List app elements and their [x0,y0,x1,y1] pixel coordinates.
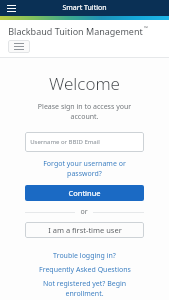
staticText: Trouble logging in? [53,251,116,261]
staticText: Forgot your username or password? [25,159,144,179]
staticText: I am a first-time user [48,225,122,235]
staticText: Continue [68,188,101,198]
button[interactable]: Frequently Asked Questions [39,265,131,275]
button[interactable]: I am a first-time user [25,222,144,238]
staticText: or [80,207,88,217]
staticText: Username or BBID Email [30,138,100,146]
staticText: Not registered yet? Begin enrollment. [25,279,144,299]
staticText: Welcome [49,72,120,95]
button[interactable]: Username or BBID Email [25,132,144,152]
button[interactable]: Not registered yet? Begin enrollment. [25,279,144,299]
staticText: Blackbaud Tuition Management [8,25,143,37]
staticText: Smart Tuition [62,3,107,13]
button[interactable]: Trouble logging in? [53,251,116,261]
button[interactable]: Continue [25,185,144,201]
button[interactable]: Forgot your username or password? [25,159,144,179]
staticText: Please sign in to access your account. [25,102,144,122]
staticText: ™ [144,25,148,32]
button[interactable]: Open navigation menu [4,1,18,15]
staticText: Frequently Asked Questions [39,265,131,275]
button[interactable]: Menu [8,40,30,53]
